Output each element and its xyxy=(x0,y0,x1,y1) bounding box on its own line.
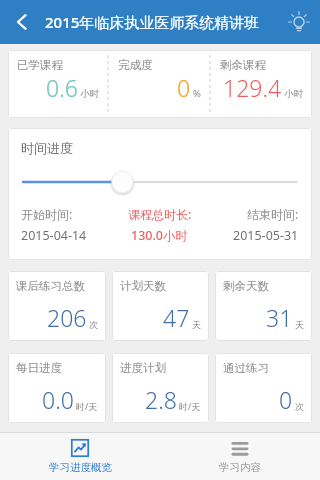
staticText: 课程总时长: xyxy=(128,206,192,222)
staticText: 剩余天数 xyxy=(223,279,269,293)
staticText: 已学课程 xyxy=(17,58,63,72)
button[interactable]: 计划天数 xyxy=(112,271,209,341)
staticText: 学习内容 xyxy=(219,461,261,474)
staticText: 每日进度 xyxy=(16,361,62,375)
staticText: 0.6 xyxy=(46,72,78,103)
button[interactable]: 剩余天数 xyxy=(215,271,312,341)
staticText: 完成度 xyxy=(118,58,153,72)
staticText: 0.0 xyxy=(42,384,74,415)
staticText: 时间进度 xyxy=(21,140,73,156)
staticText: 130.0小时 xyxy=(131,227,189,244)
button[interactable]: 学习进度概览 xyxy=(0,433,160,480)
staticText: 0 xyxy=(279,384,293,415)
button[interactable]: 每日进度 xyxy=(8,353,106,423)
staticText: 2.8 xyxy=(145,384,177,415)
staticText: 0 xyxy=(177,72,191,103)
staticText: 47 xyxy=(163,302,190,333)
staticText: 206 xyxy=(47,302,87,333)
staticText: 进度计划 xyxy=(120,361,166,375)
staticText: 小时 xyxy=(80,88,99,100)
staticText: 次 xyxy=(89,319,98,330)
staticText: 31 xyxy=(266,302,293,333)
button[interactable]: 课后练习总数 xyxy=(8,271,106,341)
staticText: 通过练习 xyxy=(223,361,269,375)
staticText: 时/天 xyxy=(76,400,98,412)
button[interactable]: 通过练习 xyxy=(215,353,312,423)
staticText: % xyxy=(193,87,201,100)
staticText: 129.4 xyxy=(223,72,282,103)
button[interactable]: 进度计划 xyxy=(112,353,209,423)
staticText: 结束时间: xyxy=(247,206,299,222)
staticText: 天 xyxy=(295,319,304,330)
button[interactable]: 学习内容 xyxy=(160,433,320,480)
staticText: 天 xyxy=(192,319,201,330)
staticText: 2015年临床执业医师系统精讲班 xyxy=(45,12,260,32)
staticText: 小时 xyxy=(284,88,303,100)
button[interactable]: Tips xyxy=(278,1,320,43)
staticText: 时/天 xyxy=(179,400,201,412)
staticText: 计划天数 xyxy=(120,279,166,293)
staticText: 课后练习总数 xyxy=(16,279,85,293)
staticText: 剩余课程 xyxy=(220,58,266,72)
staticText: 学习进度概览 xyxy=(49,461,112,474)
staticText: 次 xyxy=(295,401,304,412)
staticText: 2015-05-31 xyxy=(233,227,299,244)
button[interactable]: Back xyxy=(0,0,44,44)
staticText: 2015-04-14 xyxy=(21,227,87,244)
staticText: 开始时间: xyxy=(21,206,73,222)
